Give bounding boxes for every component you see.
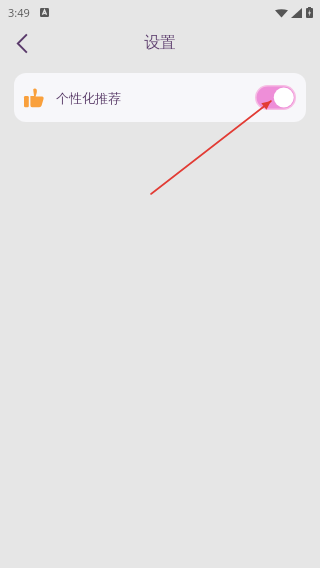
button[interactable]: 个性化推荐开关 <box>255 85 296 110</box>
staticText: 3:49 <box>8 5 30 20</box>
button[interactable]: Back <box>0 24 44 62</box>
staticText: 个性化推荐 <box>56 90 121 106</box>
staticText: 设置 <box>144 33 176 53</box>
button[interactable]: 个性化推荐 <box>14 73 306 122</box>
